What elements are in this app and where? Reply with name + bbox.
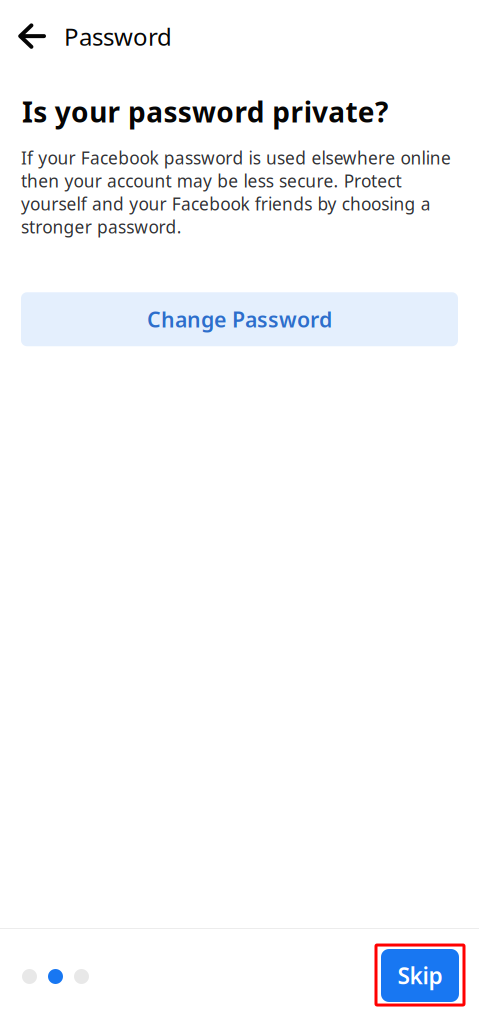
staticText: Password: [64, 21, 172, 52]
button[interactable]: Skip: [376, 945, 464, 1005]
staticText: Change Password: [147, 305, 332, 333]
staticText: Is your password private?: [22, 93, 388, 130]
button[interactable]: Change Password: [21, 292, 458, 346]
staticText: Skip: [397, 960, 442, 990]
staticText: If your Facebook password is used elsewh…: [21, 146, 451, 238]
button[interactable]: Back: [18, 18, 46, 52]
